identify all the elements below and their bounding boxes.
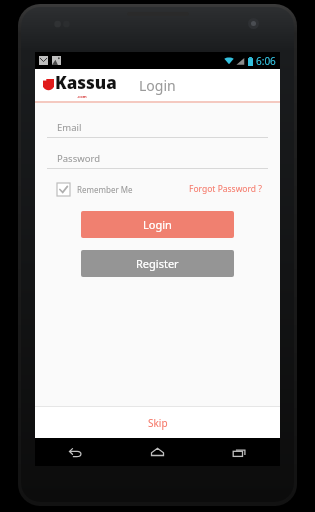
staticText: Forgot Password ? bbox=[189, 183, 262, 195]
staticText: Login bbox=[143, 217, 172, 232]
button[interactable]: Register bbox=[81, 250, 234, 277]
button[interactable]: Recent apps bbox=[198, 438, 280, 466]
button[interactable]: Home bbox=[116, 438, 198, 466]
staticText: 6:06 bbox=[256, 54, 276, 68]
button[interactable]: Skip bbox=[35, 407, 280, 438]
staticText: Register bbox=[136, 256, 179, 271]
button[interactable]: Remember Me bbox=[57, 183, 133, 196]
button[interactable]: Forgot Password ? bbox=[187, 181, 264, 197]
staticText: .com bbox=[77, 94, 87, 99]
staticText: Password bbox=[57, 152, 100, 165]
staticText: Remember Me bbox=[77, 184, 133, 195]
button[interactable]: Email bbox=[47, 117, 268, 138]
staticText: Login bbox=[139, 76, 176, 95]
staticText: Kassua bbox=[55, 71, 117, 94]
button[interactable]: Login bbox=[81, 211, 234, 238]
button[interactable]: Password bbox=[47, 148, 268, 169]
staticText: Email bbox=[57, 121, 82, 134]
staticText: Skip bbox=[148, 416, 168, 430]
button[interactable]: Back bbox=[35, 438, 116, 466]
